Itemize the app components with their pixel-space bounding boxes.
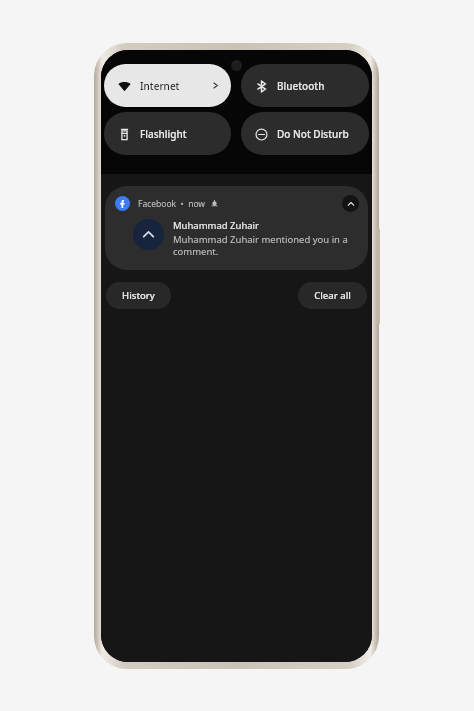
- button[interactable]: Flashlight: [104, 112, 231, 155]
- staticText: Do Not Disturb: [277, 127, 349, 141]
- button[interactable]: History: [106, 282, 171, 309]
- staticText: Bluetooth: [277, 79, 325, 93]
- button[interactable]: Do Not Disturb: [241, 112, 369, 155]
- button[interactable]: Internet: [104, 64, 231, 107]
- button[interactable]: Collapse notification: [342, 195, 359, 212]
- staticText: Clear all: [314, 289, 351, 302]
- staticText: Muhammad Zuhair: [173, 219, 259, 232]
- staticText: Internet: [140, 79, 180, 93]
- staticText: History: [122, 289, 155, 302]
- staticText: Facebook • now: [138, 198, 206, 210]
- button[interactable]: Bluetooth: [241, 64, 369, 107]
- staticText: Flashlight: [140, 127, 187, 141]
- button[interactable]: Clear all: [298, 282, 367, 309]
- staticText: Muhammad Zuhair mentioned you in a comme…: [173, 233, 359, 258]
- button[interactable]: Facebook • now: [105, 186, 368, 270]
